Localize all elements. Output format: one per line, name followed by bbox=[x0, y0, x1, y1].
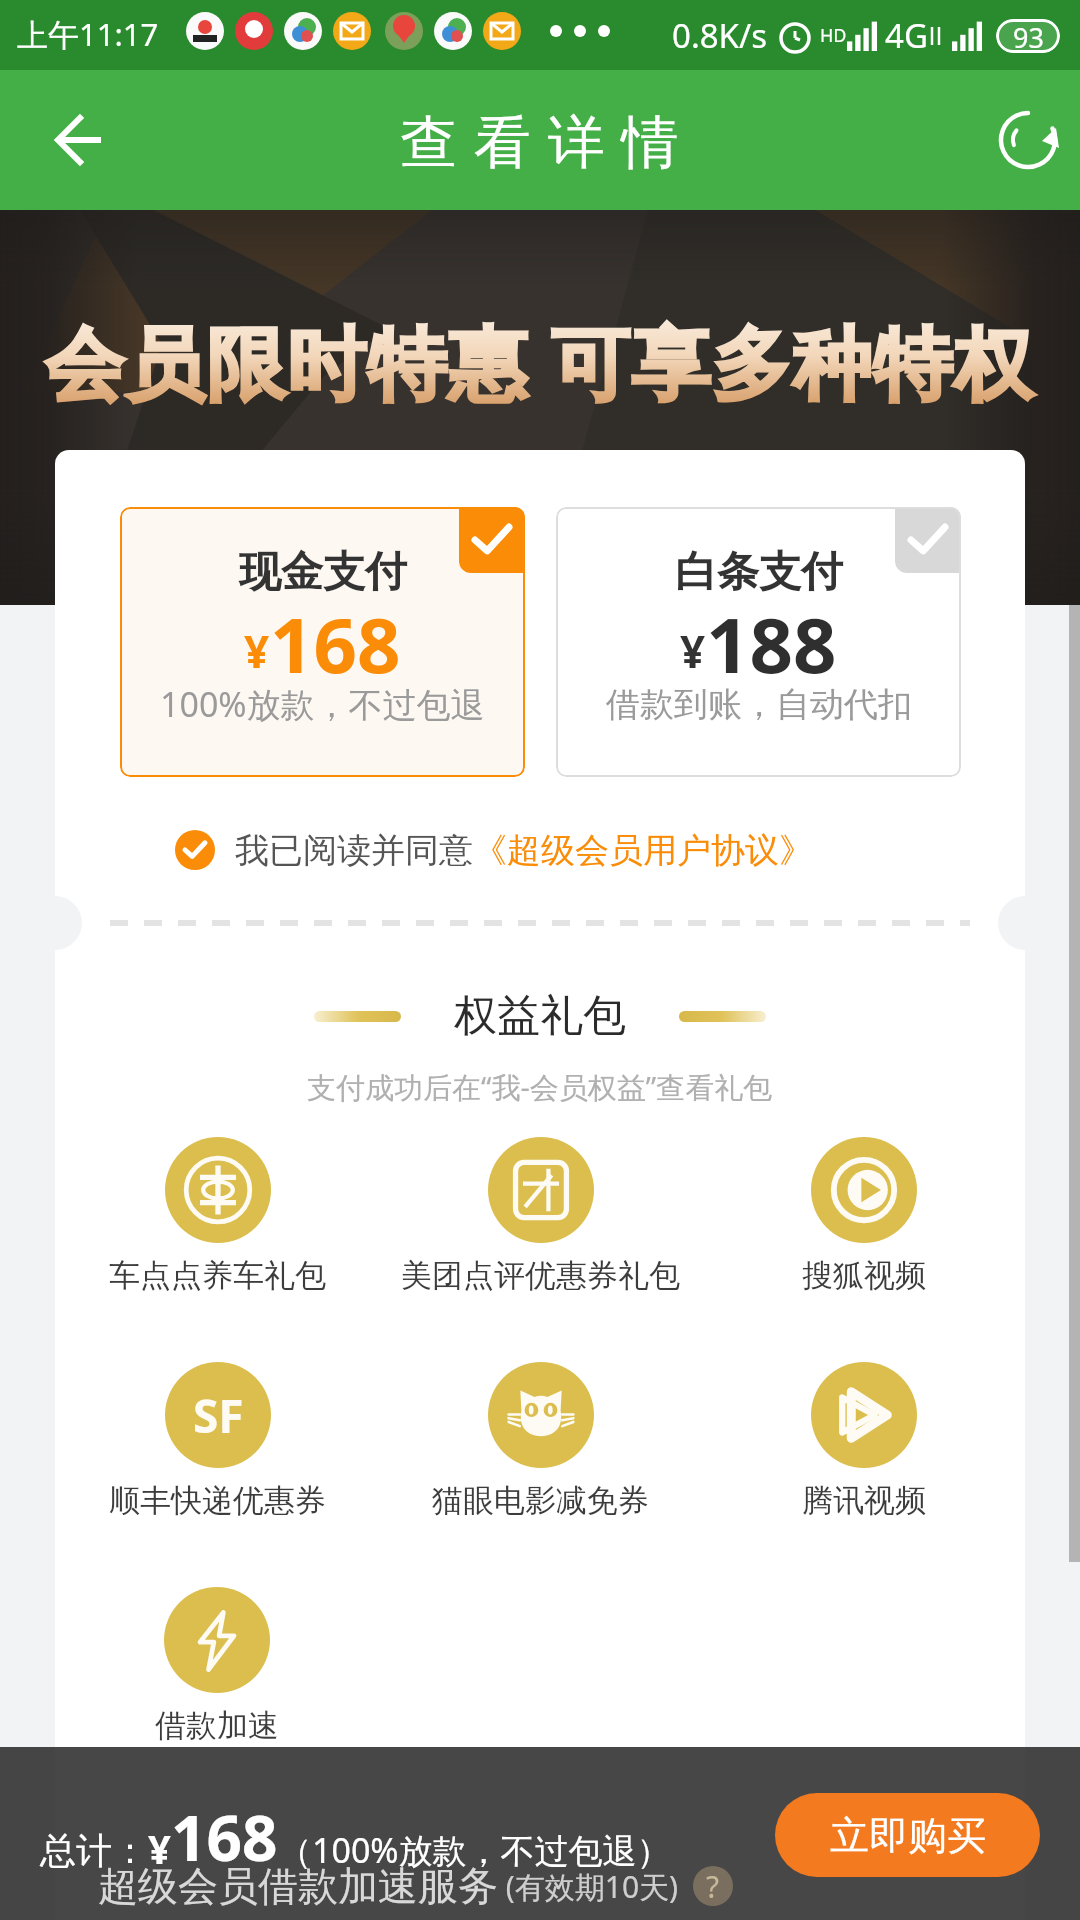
staticText: 188 bbox=[706, 592, 837, 696]
staticText: ¥ bbox=[244, 621, 270, 681]
staticText: ¥ bbox=[148, 1821, 171, 1875]
button[interactable]: 借款加速 bbox=[155, 1587, 279, 1745]
staticText: 腾讯视频 bbox=[802, 1481, 926, 1520]
button[interactable]: 白条支付 bbox=[556, 507, 961, 777]
staticText: 顺丰快递优惠券 bbox=[109, 1481, 326, 1520]
staticText: （100%放款，不过包退） bbox=[278, 1827, 671, 1873]
staticText: 93 bbox=[1013, 19, 1044, 53]
staticText: ¥ bbox=[680, 621, 706, 681]
staticText: 立即购买 bbox=[830, 1811, 986, 1860]
staticText: (有效期10天) bbox=[498, 1866, 679, 1907]
staticText: 借款到账，自动代扣 bbox=[606, 683, 912, 726]
staticText: 168 bbox=[270, 592, 401, 696]
staticText: 搜狐视频 bbox=[802, 1256, 926, 1295]
staticText: 现金支付 bbox=[239, 546, 407, 599]
button[interactable]: 搜狐视频 bbox=[802, 1137, 926, 1295]
staticText: ? bbox=[706, 1866, 720, 1906]
staticText: 猫眼电影减免券 bbox=[432, 1481, 649, 1520]
button[interactable]: SF bbox=[109, 1362, 326, 1520]
staticText: 超级会员借款加速服务 bbox=[98, 1861, 498, 1911]
button[interactable]: 立即购买 bbox=[775, 1793, 1040, 1877]
staticText: 《超级会员用户协议》 bbox=[473, 829, 813, 871]
staticText: 168 bbox=[171, 1795, 278, 1879]
staticText: 借款加速 bbox=[155, 1706, 279, 1745]
staticText: 上午11:17 bbox=[17, 13, 159, 55]
staticText: 4G bbox=[885, 13, 928, 58]
button[interactable]: 美团点评优惠券礼包 bbox=[401, 1137, 680, 1295]
staticText: 白条支付 bbox=[675, 546, 843, 599]
staticText: 查 看 详 情 bbox=[400, 101, 680, 179]
staticText: HD bbox=[820, 23, 847, 48]
staticText: 美团点评优惠券礼包 bbox=[401, 1256, 680, 1295]
button[interactable]: 我已阅读并同意 bbox=[55, 829, 933, 871]
staticText: 支付成功后在“我-会员权益”查看礼包 bbox=[307, 1067, 773, 1107]
staticText: 总计： bbox=[40, 1828, 148, 1873]
button[interactable]: Help bbox=[693, 1866, 733, 1906]
staticText: 权益礼包 bbox=[454, 989, 626, 1043]
button[interactable]: 腾讯视频 bbox=[802, 1362, 926, 1520]
button[interactable]: Back bbox=[39, 100, 119, 180]
button[interactable]: 车点点养车礼包 bbox=[109, 1137, 326, 1295]
staticText: SF bbox=[193, 1384, 244, 1447]
staticText: 0.8K/s bbox=[672, 13, 768, 58]
button[interactable]: 猫眼电影减免券 bbox=[432, 1362, 649, 1520]
staticText: 会员限时特惠 可享多种特权 bbox=[45, 308, 1035, 416]
button[interactable]: Refresh bbox=[993, 105, 1063, 175]
staticText: 我已阅读并同意 bbox=[235, 829, 473, 871]
staticText: 车点点养车礼包 bbox=[109, 1256, 326, 1295]
button[interactable]: 现金支付 bbox=[120, 507, 525, 777]
staticText: 100%放款，不过包退 bbox=[160, 681, 485, 727]
